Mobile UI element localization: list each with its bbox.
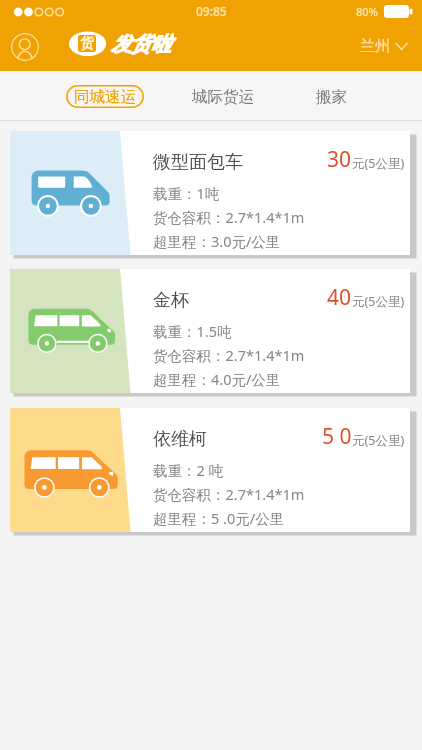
staticText: 城际货运 (192, 87, 254, 107)
button[interactable]: 同城速运 (66, 85, 144, 108)
staticText: 微型面包车 (153, 151, 243, 174)
staticText: 货仓容积：2.7*1.4*1m (153, 484, 305, 504)
staticText: 09:85 (196, 3, 227, 19)
staticText: 元(5公里) (352, 293, 405, 310)
button[interactable]: 金杯 (10, 269, 410, 393)
staticText: 货 (80, 35, 94, 52)
staticText: 搬家 (316, 87, 347, 107)
staticText: 载重：2 吨 (153, 460, 224, 480)
button[interactable]: 发货啦 (68, 31, 106, 56)
staticText: 载重：1吨 (153, 183, 220, 203)
button[interactable]: Account (11, 33, 39, 61)
button[interactable]: 兰州 (360, 37, 408, 56)
staticText: 依维柯 (153, 428, 207, 451)
staticText: 金杯 (153, 289, 189, 312)
staticText: 超里程：4.0元/公里 (153, 369, 281, 389)
staticText: 货仓容积：2.7*1.4*1m (153, 207, 305, 227)
staticText: 5 0 (322, 422, 352, 451)
staticText: 30 (327, 145, 352, 174)
staticText: 80% (356, 4, 378, 19)
staticText: 兰州 (360, 37, 390, 56)
staticText: 发货啦 (111, 32, 171, 57)
staticText: 元(5公里) (352, 432, 405, 449)
staticText: 超里程：3.0元/公里 (153, 231, 281, 251)
button[interactable]: 城际货运 (186, 85, 260, 108)
button[interactable]: 依维柯 (10, 408, 410, 532)
staticText: 超里程：5 .0元/公里 (153, 508, 285, 528)
button[interactable]: 搬家 (299, 85, 363, 108)
staticText: 同城速运 (74, 87, 136, 107)
staticText: 元(5公里) (352, 155, 405, 172)
staticText: 货仓容积：2.7*1.4*1m (153, 345, 305, 365)
staticText: 载重：1.5吨 (153, 321, 232, 341)
button[interactable]: 微型面包车 (10, 131, 410, 255)
staticText: 40 (327, 283, 352, 312)
